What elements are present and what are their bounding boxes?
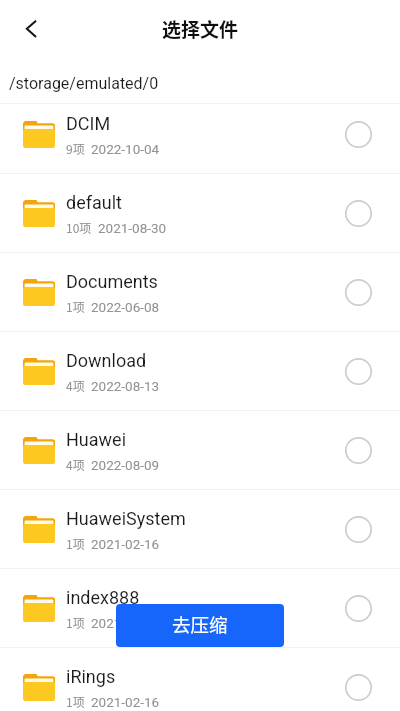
staticText: 2021-02-16 <box>91 694 160 710</box>
staticText: 10项 <box>66 219 92 236</box>
staticText: 4项 <box>66 377 85 394</box>
staticText: 2022-08-09 <box>91 457 160 473</box>
staticText: 1项 <box>66 693 85 710</box>
staticText: 1项 <box>66 298 85 315</box>
button[interactable]: HuaweiSystem <box>0 490 400 569</box>
staticText: 2021-02-16 <box>91 536 160 552</box>
staticText: 1项 <box>66 535 85 552</box>
staticText: DCIM <box>66 113 111 134</box>
button[interactable]: Select DCIM <box>331 107 385 161</box>
staticText: 2022-08-13 <box>91 378 160 394</box>
button[interactable]: DCIM <box>0 95 400 174</box>
staticText: 2022-10-04 <box>91 141 160 157</box>
staticText: 1项 <box>66 614 85 631</box>
staticText: Documents <box>66 271 158 292</box>
staticText: 4项 <box>66 456 85 473</box>
button[interactable]: Download <box>0 332 400 411</box>
staticText: /storage/emulated/0 <box>9 74 159 93</box>
button[interactable]: Huawei <box>0 411 400 490</box>
button[interactable]: iRings <box>0 648 400 711</box>
button[interactable]: default <box>0 174 400 253</box>
button[interactable]: Select default <box>331 186 385 240</box>
staticText: 2021-05-12 <box>91 615 160 631</box>
button[interactable]: index888 <box>0 569 400 648</box>
staticText: 去压缩 <box>172 611 228 638</box>
button[interactable]: Documents <box>0 253 400 332</box>
staticText: Huawei <box>66 429 127 450</box>
button[interactable]: Select Huawei <box>331 423 385 477</box>
button[interactable]: Select index888 <box>331 581 385 635</box>
staticText: 2021-08-30 <box>98 220 167 236</box>
staticText: 2022-06-08 <box>91 299 160 315</box>
button[interactable]: Select iRings <box>331 660 385 711</box>
staticText: Download <box>66 350 147 371</box>
staticText: 9项 <box>66 140 85 157</box>
button[interactable]: 去压缩 <box>116 604 284 647</box>
button[interactable]: Select HuaweiSystem <box>331 502 385 556</box>
button[interactable]: Back <box>11 9 51 49</box>
button[interactable]: Select Download <box>331 344 385 398</box>
staticText: iRings <box>66 666 116 687</box>
staticText: 选择文件 <box>162 15 239 43</box>
staticText: HuaweiSystem <box>66 508 186 529</box>
staticText: default <box>66 192 122 213</box>
staticText: index888 <box>66 587 140 608</box>
button[interactable]: Select Documents <box>331 265 385 319</box>
